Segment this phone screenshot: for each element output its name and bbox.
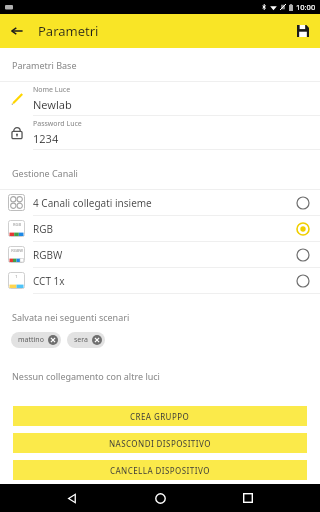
staticText: Gestione Canali [12,167,78,179]
staticText: CREA GRUPPO [130,411,190,422]
staticText: 4 Canali collegati insieme [33,196,296,210]
staticText: CANCELLA DISPOSITIVO [110,465,210,476]
button[interactable]: sera [67,332,105,348]
button[interactable]: Recents [232,484,264,512]
staticText: Nome Luce [33,85,71,95]
staticText: Password Luce [33,119,82,129]
staticText: CCT 1x [33,274,296,288]
button[interactable]: CANCELLA DISPOSITIVO [13,460,307,480]
staticText: Parametri [38,22,99,40]
staticText: RGBW [33,248,296,262]
button[interactable]: 4 Canali collegati insieme [0,190,320,215]
button[interactable]: mattino [11,332,61,348]
staticText: 1 [15,274,18,279]
button[interactable]: NASCONDI DISPOSITIVO [13,433,307,453]
button[interactable]: CREA GRUPPO [13,406,307,426]
button[interactable]: Back [0,14,34,48]
staticText: Nessun collegamento con altre luci [12,370,160,382]
staticText: RGB [33,222,296,236]
staticText: 10:00 [296,2,316,12]
button[interactable]: Back [56,484,88,512]
staticText: RGBW [11,248,23,253]
button[interactable]: Nome Luce [0,82,320,115]
staticText: Newlab [33,97,72,112]
staticText: NASCONDI DISPOSITIVO [109,438,211,449]
button[interactable]: RGB [0,216,320,241]
staticText: 1234 [33,131,59,146]
button[interactable]: Save [286,14,320,48]
button[interactable]: Password Luce [0,116,320,149]
staticText: Salvata nei seguenti scenari [12,311,130,323]
button[interactable]: Home [144,484,176,512]
staticText: RGB [13,222,21,227]
button[interactable]: 1 [0,268,320,293]
button[interactable]: RGBW [0,242,320,267]
staticText: sera [74,335,88,345]
staticText: Parametri Base [12,59,77,71]
staticText: mattino [18,335,44,345]
